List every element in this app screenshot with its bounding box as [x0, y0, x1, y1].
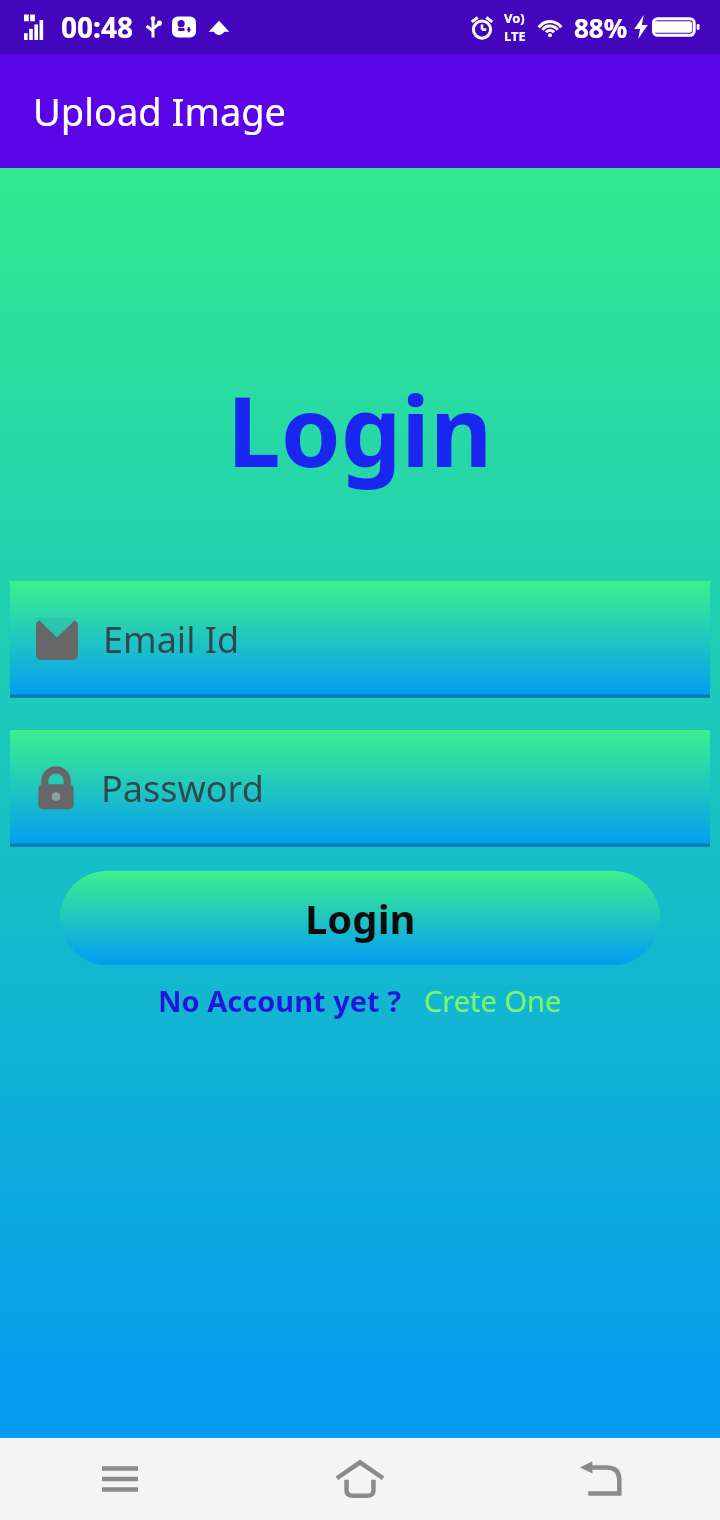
staticText: 88%: [574, 10, 628, 45]
button[interactable]: Home: [240, 1438, 480, 1520]
staticText: Vo): [504, 9, 525, 27]
staticText: Upload Image: [33, 85, 287, 137]
button[interactable]: Recent apps: [0, 1438, 240, 1520]
button[interactable]: No Account yet ?: [158, 981, 402, 1020]
button[interactable]: Back: [480, 1438, 720, 1520]
other: Password: [36, 765, 76, 813]
button[interactable]: Email: [10, 581, 710, 698]
staticText: No Account yet ?: [158, 981, 402, 1020]
staticText: 00:48: [61, 8, 133, 46]
staticText: Login: [305, 891, 416, 945]
staticText: Crete One: [424, 981, 562, 1020]
button[interactable]: Password: [10, 730, 710, 847]
button[interactable]: Crete One: [424, 981, 562, 1020]
button[interactable]: Login: [60, 871, 660, 965]
staticText: Password: [101, 764, 264, 813]
staticText: Login: [227, 364, 493, 495]
staticText: Email Id: [103, 615, 240, 664]
staticText: LTE: [504, 27, 526, 45]
other: Email: [36, 620, 78, 660]
